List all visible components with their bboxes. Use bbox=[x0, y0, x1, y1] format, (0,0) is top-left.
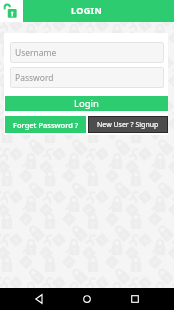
button[interactable]: Login bbox=[5, 96, 168, 111]
button[interactable]: Recent apps bbox=[111, 288, 159, 310]
staticText: Login bbox=[74, 97, 99, 110]
staticText: LOGIN bbox=[71, 4, 103, 16]
staticText: New User ? Signup bbox=[97, 120, 159, 130]
button[interactable]: Home bbox=[63, 288, 111, 310]
staticText: Forget Password ? bbox=[13, 120, 79, 130]
button[interactable]: Back bbox=[15, 288, 63, 310]
staticText: Password bbox=[15, 72, 54, 84]
staticText: Username bbox=[15, 47, 57, 59]
button[interactable]: Forget Password ? bbox=[5, 116, 86, 133]
button[interactable]: New User ? Signup bbox=[88, 116, 168, 133]
